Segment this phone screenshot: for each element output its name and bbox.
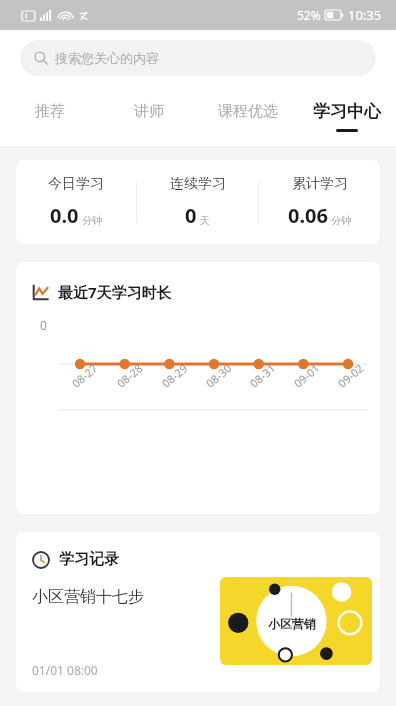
button[interactable]: 搜索您关心的内容 — [20, 40, 376, 76]
staticText: 学习记录 — [59, 550, 119, 569]
staticText: 0.06 — [288, 202, 328, 229]
staticText: 08-27 — [69, 360, 100, 390]
staticText: 小区营销十七步 — [32, 587, 144, 607]
staticText: 推荐 — [35, 102, 65, 121]
staticText: 连续学习 — [170, 175, 226, 193]
staticText: 今日学习 — [48, 175, 104, 193]
button[interactable]: 今日学习 — [16, 160, 380, 244]
staticText: 0 — [40, 317, 47, 333]
staticText: 课程优选 — [218, 102, 278, 121]
staticText: 小区营销 — [268, 616, 316, 631]
staticText: 01/01 08:00 — [32, 662, 98, 678]
staticText: 分钟 — [82, 214, 102, 227]
staticText: 08-28 — [114, 360, 145, 390]
staticText: 09-02 — [335, 360, 366, 390]
staticText: 0.0 — [50, 202, 79, 229]
button[interactable]: 最近7天学习时长 — [16, 262, 380, 514]
staticText: 讲师 — [134, 102, 164, 121]
staticText: 天 — [200, 214, 210, 227]
staticText: 0 — [185, 202, 197, 229]
staticText: 搜索您关心的内容 — [55, 50, 159, 66]
button[interactable]: 学习中心 — [297, 86, 396, 146]
staticText: 学习中心 — [313, 101, 381, 122]
staticText: 08-29 — [159, 360, 190, 390]
staticText: 08-31 — [247, 360, 278, 390]
button[interactable]: Study record — [16, 532, 380, 692]
other: Study record — [32, 551, 50, 569]
staticText: 10:35 — [348, 6, 382, 24]
button[interactable]: 讲师 — [99, 86, 198, 146]
staticText: 分钟 — [331, 214, 351, 227]
staticText: 最近7天学习时长 — [58, 282, 172, 302]
button[interactable]: 推荐 — [0, 86, 99, 146]
staticText: 08-30 — [203, 360, 234, 390]
staticText: 09-01 — [291, 360, 322, 390]
staticText: 52% — [297, 7, 321, 23]
staticText: 累计学习 — [292, 175, 348, 193]
button[interactable]: 课程优选 — [198, 86, 297, 146]
